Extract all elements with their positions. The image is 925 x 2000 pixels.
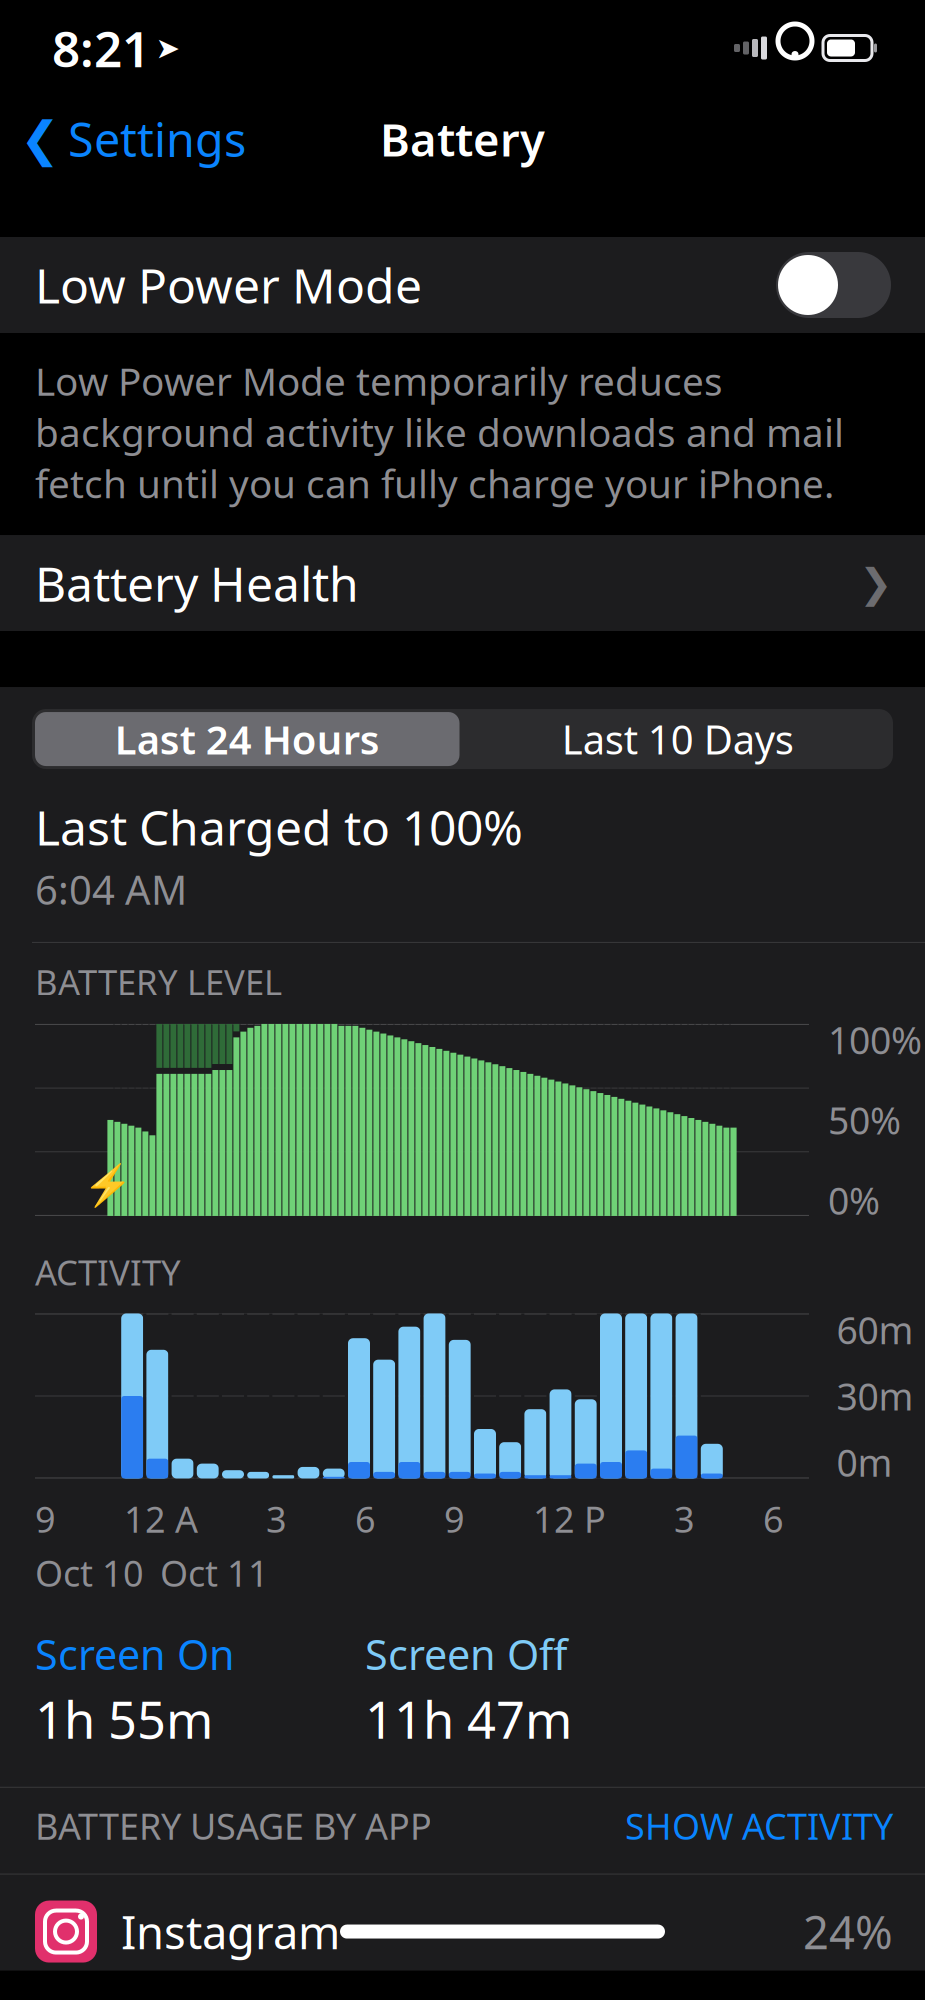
- staticText: 50%: [828, 1095, 901, 1145]
- staticText: Last Charged to 100%: [35, 795, 523, 859]
- staticText: Battery: [380, 109, 545, 169]
- staticText: 11h 47m: [365, 1685, 572, 1753]
- staticText: Screen On: [35, 1627, 235, 1681]
- staticText: 6: [763, 1495, 784, 1543]
- button[interactable]: ❮: [0, 98, 246, 180]
- staticText: ⚡: [83, 1162, 133, 1208]
- button[interactable]: Last 10 Days: [462, 709, 893, 769]
- button[interactable]: Low Power Mode: [0, 237, 925, 333]
- staticText: 12 P: [533, 1495, 606, 1543]
- staticText: Oct 11: [160, 1549, 269, 1597]
- staticText: 1h 55m: [35, 1685, 213, 1753]
- staticText: Low Power Mode: [35, 253, 422, 317]
- staticText: 8:21: [52, 15, 150, 81]
- staticText: 100%: [828, 1015, 922, 1064]
- button[interactable]: Last 24 Hours: [32, 709, 462, 769]
- staticText: 3: [674, 1495, 695, 1543]
- staticText: ➤: [155, 31, 180, 65]
- staticText: 9: [444, 1495, 465, 1543]
- staticText: 6: [355, 1495, 376, 1543]
- staticText: 12 A: [124, 1495, 198, 1543]
- staticText: 6:04 AM: [35, 863, 187, 916]
- staticText: 3: [266, 1495, 287, 1543]
- staticText: 9: [35, 1495, 56, 1543]
- staticText: Battery Health: [35, 551, 359, 615]
- staticText: BATTERY LEVEL: [35, 959, 282, 1005]
- staticText: 0m: [836, 1437, 892, 1487]
- staticText: BATTERY USAGE BY APP: [35, 1802, 432, 1850]
- staticText: Instagram: [121, 1901, 340, 1962]
- button[interactable]: SHOW ACTIVITY: [625, 1796, 893, 1856]
- button[interactable]: Instagram: [0, 1875, 925, 1971]
- staticText: Last 24 Hours: [115, 712, 380, 766]
- staticText: Last 10 Days: [562, 712, 794, 766]
- staticText: 30m: [836, 1371, 913, 1421]
- staticText: SHOW ACTIVITY: [625, 1802, 893, 1850]
- staticText: ❯: [859, 560, 893, 606]
- staticText: Settings: [68, 108, 246, 170]
- staticText: ACTIVITY: [35, 1249, 181, 1295]
- staticText: 24%: [803, 1901, 893, 1962]
- button[interactable]: Battery Health: [0, 535, 925, 631]
- staticText: Low Power Mode temporarily reduces backg…: [35, 355, 844, 509]
- staticText: Oct 10: [35, 1549, 144, 1597]
- staticText: 0%: [828, 1175, 880, 1225]
- staticText: 60m: [836, 1305, 913, 1355]
- staticText: Screen Off: [365, 1627, 567, 1681]
- staticText: ❮: [20, 112, 60, 166]
